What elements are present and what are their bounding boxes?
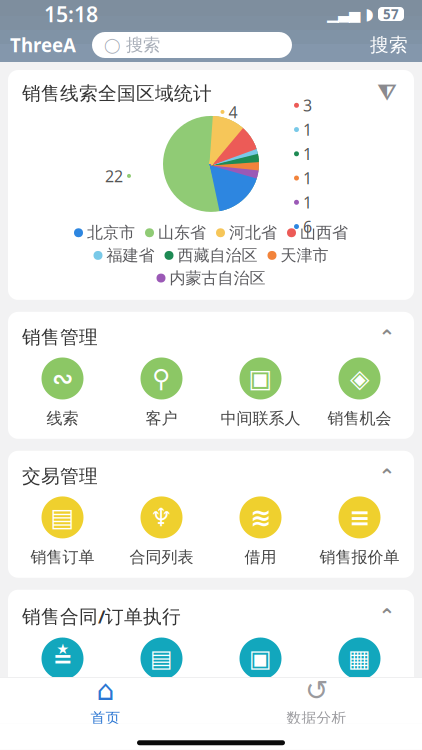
staticText: ≋ [250, 503, 271, 532]
button[interactable]: ◈ [310, 353, 409, 433]
staticText: ▁▃▅ [327, 6, 360, 22]
staticText: 搜索 [126, 34, 160, 56]
staticText: 中间联系人 [220, 408, 300, 428]
staticText: ⌂ [96, 674, 114, 706]
staticText: ▤ [150, 645, 173, 672]
button[interactable]: 执行项 3 [211, 632, 310, 684]
staticText: 销售合同/订单执行 [22, 604, 181, 628]
staticText: 销售线索全国区域统计 [22, 82, 212, 105]
staticText: 数据分析 [286, 709, 346, 727]
staticText: 首页 [90, 709, 120, 727]
staticText: 客户 [145, 408, 177, 428]
staticText: 1 [303, 119, 312, 140]
button[interactable]: 执行项 2 [112, 632, 211, 684]
staticText: 销售管理 [22, 326, 98, 349]
staticText: 22 [105, 165, 123, 186]
staticText: ThreeA [10, 33, 76, 57]
button[interactable]: 执行项 4 [310, 632, 409, 684]
staticText: 1 [303, 192, 312, 213]
staticText: 销售报价单 [319, 547, 399, 567]
staticText: 4 [228, 101, 237, 122]
button[interactable]: ♆ [112, 492, 211, 572]
staticText: 1 [303, 167, 312, 189]
staticText: 借用 [244, 547, 276, 567]
staticText: ⌃ [378, 465, 395, 488]
staticText: 山东省 [158, 223, 206, 243]
staticText: 6 [303, 216, 312, 237]
staticText: ▣ [249, 645, 272, 672]
button[interactable]: 折叠 [374, 605, 400, 627]
staticText: ≛ [52, 645, 72, 672]
staticText: ▣ [248, 364, 272, 393]
staticText: 1 [303, 143, 312, 164]
staticText: 北京市 [87, 223, 135, 243]
staticText: 线索 [46, 408, 78, 428]
staticText: ◗ [365, 5, 373, 23]
button[interactable]: ∾ [13, 353, 112, 433]
button[interactable]: 执行项 1 [13, 632, 112, 684]
staticText: 57 [383, 5, 399, 23]
staticText: ∾ [52, 364, 73, 393]
staticText: ⧨ [377, 82, 397, 104]
staticText: ⌃ [378, 605, 395, 627]
staticText: ◯ [104, 37, 120, 53]
button[interactable]: ↺ [211, 678, 422, 724]
button[interactable]: 折叠 [374, 465, 400, 487]
button[interactable]: ⚲ [112, 353, 211, 433]
button[interactable]: ▣ [211, 353, 310, 433]
button[interactable]: 筛选 [374, 82, 400, 104]
button[interactable]: ◯ [92, 32, 292, 58]
button[interactable]: 折叠 [374, 326, 400, 348]
staticText: 天津市 [280, 246, 328, 265]
staticText: 销售订单 [30, 547, 94, 567]
staticText: 河北省 [229, 223, 277, 243]
staticText: ⚲ [152, 364, 171, 393]
staticText: 交易管理 [22, 465, 98, 488]
staticText: 搜索 [370, 33, 408, 56]
staticText: ⌃ [378, 326, 395, 349]
staticText: ▦ [348, 645, 371, 672]
staticText: 西藏自治区 [177, 246, 257, 265]
staticText: ↺ [305, 674, 328, 706]
button[interactable]: ▤ [13, 492, 112, 572]
staticText: 合同列表 [129, 547, 193, 567]
button[interactable]: ≡ [310, 492, 409, 572]
button[interactable]: ≋ [211, 492, 310, 572]
staticText: 福建省 [106, 246, 154, 265]
button[interactable]: 搜索 [370, 33, 422, 56]
staticText: ≡ [349, 503, 370, 532]
staticText: ♆ [150, 503, 173, 532]
button[interactable]: ⌂ [0, 678, 211, 724]
staticText: 销售机会 [327, 408, 391, 428]
staticText: 15:18 [44, 0, 98, 28]
staticText: 山西省 [300, 223, 348, 243]
staticText: ▤ [50, 503, 74, 532]
staticText: 3 [303, 95, 312, 116]
staticText: 内蒙古自治区 [169, 268, 265, 288]
staticText: ◈ [350, 364, 369, 393]
